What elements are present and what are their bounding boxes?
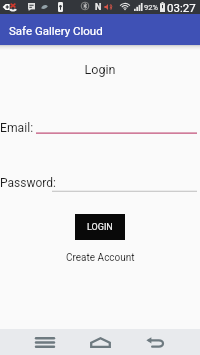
staticText: Safe Gallery Cloud (9, 24, 103, 37)
button[interactable]: Email input field (36, 119, 197, 135)
staticText: LOGIN (87, 222, 113, 233)
button[interactable]: Home (84, 331, 116, 353)
button[interactable]: Password input field (52, 177, 197, 193)
button[interactable]: Create Account (60, 250, 141, 266)
staticText: 92% (144, 3, 158, 12)
button[interactable]: LOGIN (75, 214, 125, 240)
button[interactable]: Recent apps (28, 332, 61, 352)
staticText: Create Account (66, 252, 135, 264)
staticText: Email: (0, 121, 34, 135)
staticText: Login (0, 62, 200, 77)
staticText: N (95, 2, 102, 12)
button[interactable]: Back (139, 332, 171, 352)
staticText: 03:27 (167, 1, 196, 14)
staticText: Password: (0, 176, 56, 190)
